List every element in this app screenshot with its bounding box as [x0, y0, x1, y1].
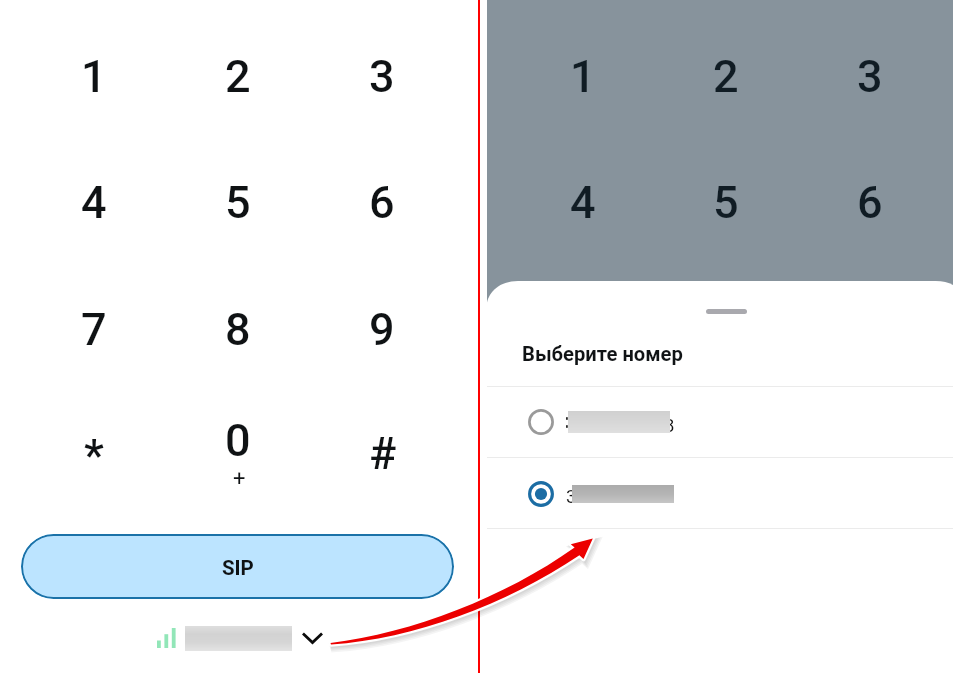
button[interactable]: 7 — [46, 289, 142, 369]
button[interactable]: 1 — [46, 36, 142, 116]
staticText: 1 — [81, 50, 107, 103]
button[interactable]: SIP — [21, 534, 454, 599]
button[interactable]: 5 — [678, 162, 774, 242]
button[interactable]: 3 — [334, 36, 430, 116]
staticText: 1 — [570, 50, 596, 103]
button[interactable]: * — [46, 415, 142, 495]
staticText: 3 — [566, 486, 577, 508]
staticText: 3 — [857, 50, 883, 103]
button[interactable]: 5 — [190, 162, 286, 242]
staticText: 2 — [225, 50, 251, 103]
button[interactable]: 4 — [46, 162, 142, 242]
button[interactable]: 1 — [535, 36, 631, 116]
staticText: + — [233, 466, 246, 492]
staticText: * — [84, 429, 104, 482]
button[interactable]: 4 — [535, 162, 631, 242]
button[interactable] — [487, 458, 953, 529]
button[interactable]: 9 — [334, 289, 430, 369]
other: Select SIM — [302, 631, 323, 645]
button[interactable]: Select SIM — [157, 620, 323, 656]
staticText: 9 — [369, 303, 395, 356]
button[interactable]: 6 — [822, 162, 918, 242]
button[interactable]: 2 — [678, 36, 774, 116]
button[interactable]: 6 — [334, 162, 430, 242]
staticText: 5 — [225, 176, 251, 229]
staticText: 3 — [369, 50, 395, 103]
button[interactable]: 2 — [190, 36, 286, 116]
button[interactable]: # — [335, 413, 431, 493]
staticText: SIP — [222, 556, 254, 580]
staticText: 7 — [81, 303, 107, 356]
staticText: 5 — [713, 176, 739, 229]
staticText: 2 — [713, 50, 739, 103]
button[interactable] — [487, 387, 953, 457]
button[interactable]: 8 — [190, 289, 286, 369]
staticText: 6 — [369, 176, 395, 229]
staticText: 8 — [664, 415, 675, 437]
staticText: # — [369, 427, 397, 480]
staticText: Выберите номер — [522, 342, 683, 366]
button[interactable]: 3 — [822, 36, 918, 116]
staticText: 4 — [570, 176, 596, 229]
staticText: 8 — [225, 303, 251, 356]
button[interactable]: 0 — [190, 400, 286, 480]
staticText: 6 — [857, 176, 883, 229]
staticText: 0 — [225, 414, 251, 467]
staticText: 4 — [81, 176, 107, 229]
